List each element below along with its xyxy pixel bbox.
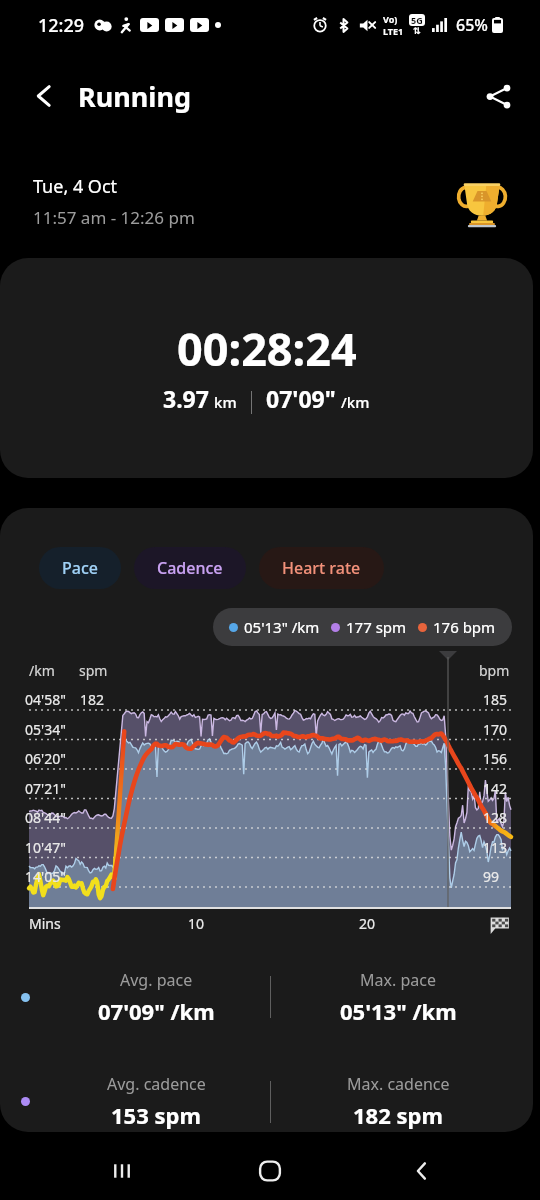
staticText: Running	[78, 78, 192, 115]
staticText: /km	[29, 661, 55, 680]
staticText: Max. pace	[360, 969, 436, 991]
staticText: 00:28:24	[177, 318, 357, 379]
staticText: Avg. pace	[120, 969, 193, 991]
staticText: Tue, 4 Oct	[33, 174, 118, 199]
staticText: Vo)	[383, 13, 398, 25]
staticText: bpm	[479, 661, 510, 680]
staticText: Max. cadence	[347, 1073, 450, 1095]
staticText: 10	[188, 914, 205, 933]
staticText: Cadence	[157, 557, 223, 579]
button[interactable]: Heart rate	[259, 547, 384, 589]
staticText: 5G	[411, 14, 423, 26]
staticText: 11:57 am - 12:26 pm	[33, 206, 195, 229]
button[interactable]: Recent apps	[62, 1142, 182, 1200]
staticText: 08'44"	[25, 808, 66, 827]
button[interactable]: 05'13" /km	[213, 608, 512, 646]
staticText: 99	[483, 867, 500, 886]
staticText: 14'05"	[25, 867, 66, 886]
staticText: /km	[341, 392, 370, 412]
staticText: 05'34"	[25, 720, 66, 739]
staticText: 65%	[456, 14, 488, 36]
staticText: 04'58"	[25, 690, 66, 709]
staticText: 113	[483, 838, 508, 857]
staticText: Mins	[29, 914, 61, 933]
staticText: 05'13" /km	[340, 996, 457, 1026]
button[interactable]: Back	[358, 1142, 486, 1200]
staticText: 07'21"	[25, 779, 66, 798]
button[interactable]: Back	[24, 76, 64, 116]
staticText: spm	[79, 661, 108, 680]
staticText: 182 spm	[353, 1100, 443, 1130]
staticText: 142	[483, 779, 508, 798]
staticText: 3.97	[163, 383, 209, 414]
button[interactable]: Max. pace	[271, 969, 525, 1026]
button[interactable]: Home	[182, 1142, 358, 1200]
staticText: Heart rate	[282, 557, 361, 579]
staticText: 07'09"	[266, 383, 336, 414]
button[interactable]: Cadence	[134, 547, 246, 589]
staticText: 170	[483, 720, 508, 739]
staticText: ⇅	[413, 26, 421, 36]
staticText: 20	[359, 914, 376, 933]
button[interactable]: Pace	[39, 547, 121, 589]
staticText: 176 bpm	[433, 617, 496, 637]
staticText: 182	[80, 690, 105, 709]
staticText: 128	[483, 808, 508, 827]
staticText: 153 spm	[111, 1100, 201, 1130]
button[interactable]: Share	[478, 76, 518, 116]
staticText: Avg. cadence	[107, 1073, 206, 1095]
staticText: km	[214, 392, 237, 412]
button[interactable]: Max. cadence	[271, 1073, 525, 1130]
staticText: 06'20"	[25, 749, 66, 768]
staticText: 12:29	[38, 13, 85, 38]
staticText: 07'09" /km	[98, 996, 215, 1026]
button[interactable]: 00:28:24	[0, 258, 533, 478]
button[interactable]: Avg. pace	[42, 969, 270, 1026]
button[interactable]: Avg. cadence	[42, 1073, 270, 1130]
staticText: Pace	[62, 557, 98, 579]
staticText: 05'13" /km	[244, 617, 320, 637]
staticText: 10'47"	[25, 838, 66, 857]
staticText: LTE1	[383, 25, 404, 37]
staticText: 185	[483, 690, 508, 709]
staticText: 156	[483, 749, 508, 768]
staticText: 177 spm	[346, 617, 407, 637]
